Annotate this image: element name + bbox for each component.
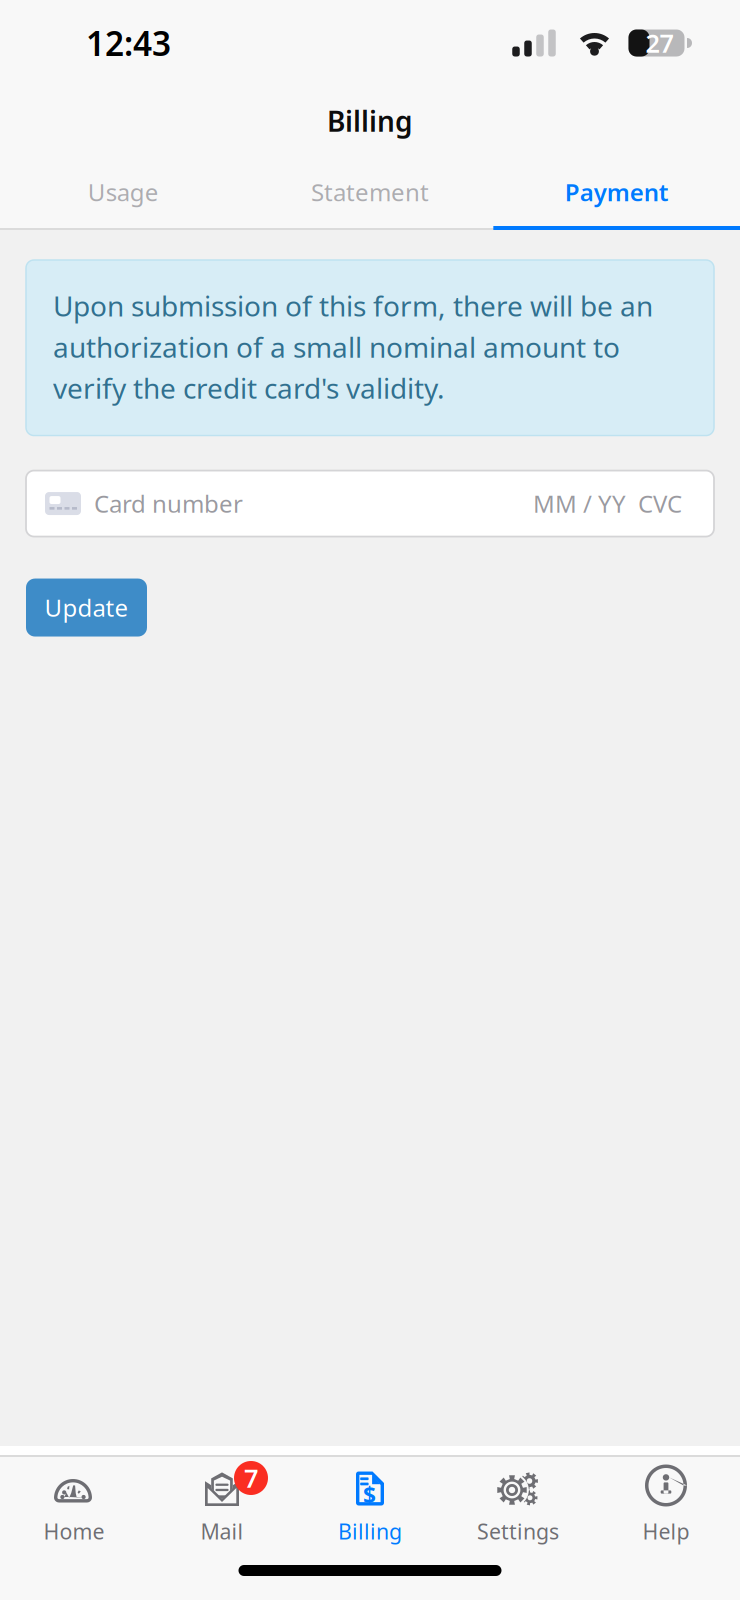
button[interactable]: Help bbox=[592, 1457, 740, 1543]
button[interactable]: Update bbox=[26, 578, 147, 636]
staticText: Payment bbox=[565, 176, 669, 208]
staticText: Help bbox=[642, 1517, 689, 1545]
staticText: 12:43 bbox=[86, 21, 171, 65]
staticText: Update bbox=[44, 592, 128, 623]
staticText: Usage bbox=[88, 176, 159, 208]
staticText: MM / YY bbox=[533, 488, 626, 519]
button[interactable]: $ bbox=[296, 1457, 444, 1543]
staticText: Card number bbox=[94, 488, 243, 519]
button[interactable]: Mail bbox=[148, 1457, 296, 1543]
staticText: 7 bbox=[244, 1461, 258, 1495]
staticText: $ bbox=[363, 1480, 376, 1510]
button[interactable]: Settings bbox=[444, 1457, 592, 1543]
button[interactable]: Home bbox=[0, 1457, 148, 1543]
staticText: Billing bbox=[338, 1517, 402, 1545]
staticText: CVC bbox=[638, 488, 682, 519]
button[interactable]: Payment bbox=[493, 156, 740, 228]
staticText: Home bbox=[43, 1517, 104, 1545]
staticText: Settings bbox=[477, 1517, 559, 1545]
staticText: Mail bbox=[200, 1517, 243, 1545]
staticText: 27 bbox=[645, 26, 673, 60]
button[interactable]: Usage bbox=[0, 156, 247, 228]
staticText: Statement bbox=[311, 176, 429, 208]
staticText: Upon submission of this form, there will… bbox=[53, 287, 653, 406]
staticText: Billing bbox=[327, 102, 413, 140]
button[interactable]: Statement bbox=[247, 156, 493, 228]
